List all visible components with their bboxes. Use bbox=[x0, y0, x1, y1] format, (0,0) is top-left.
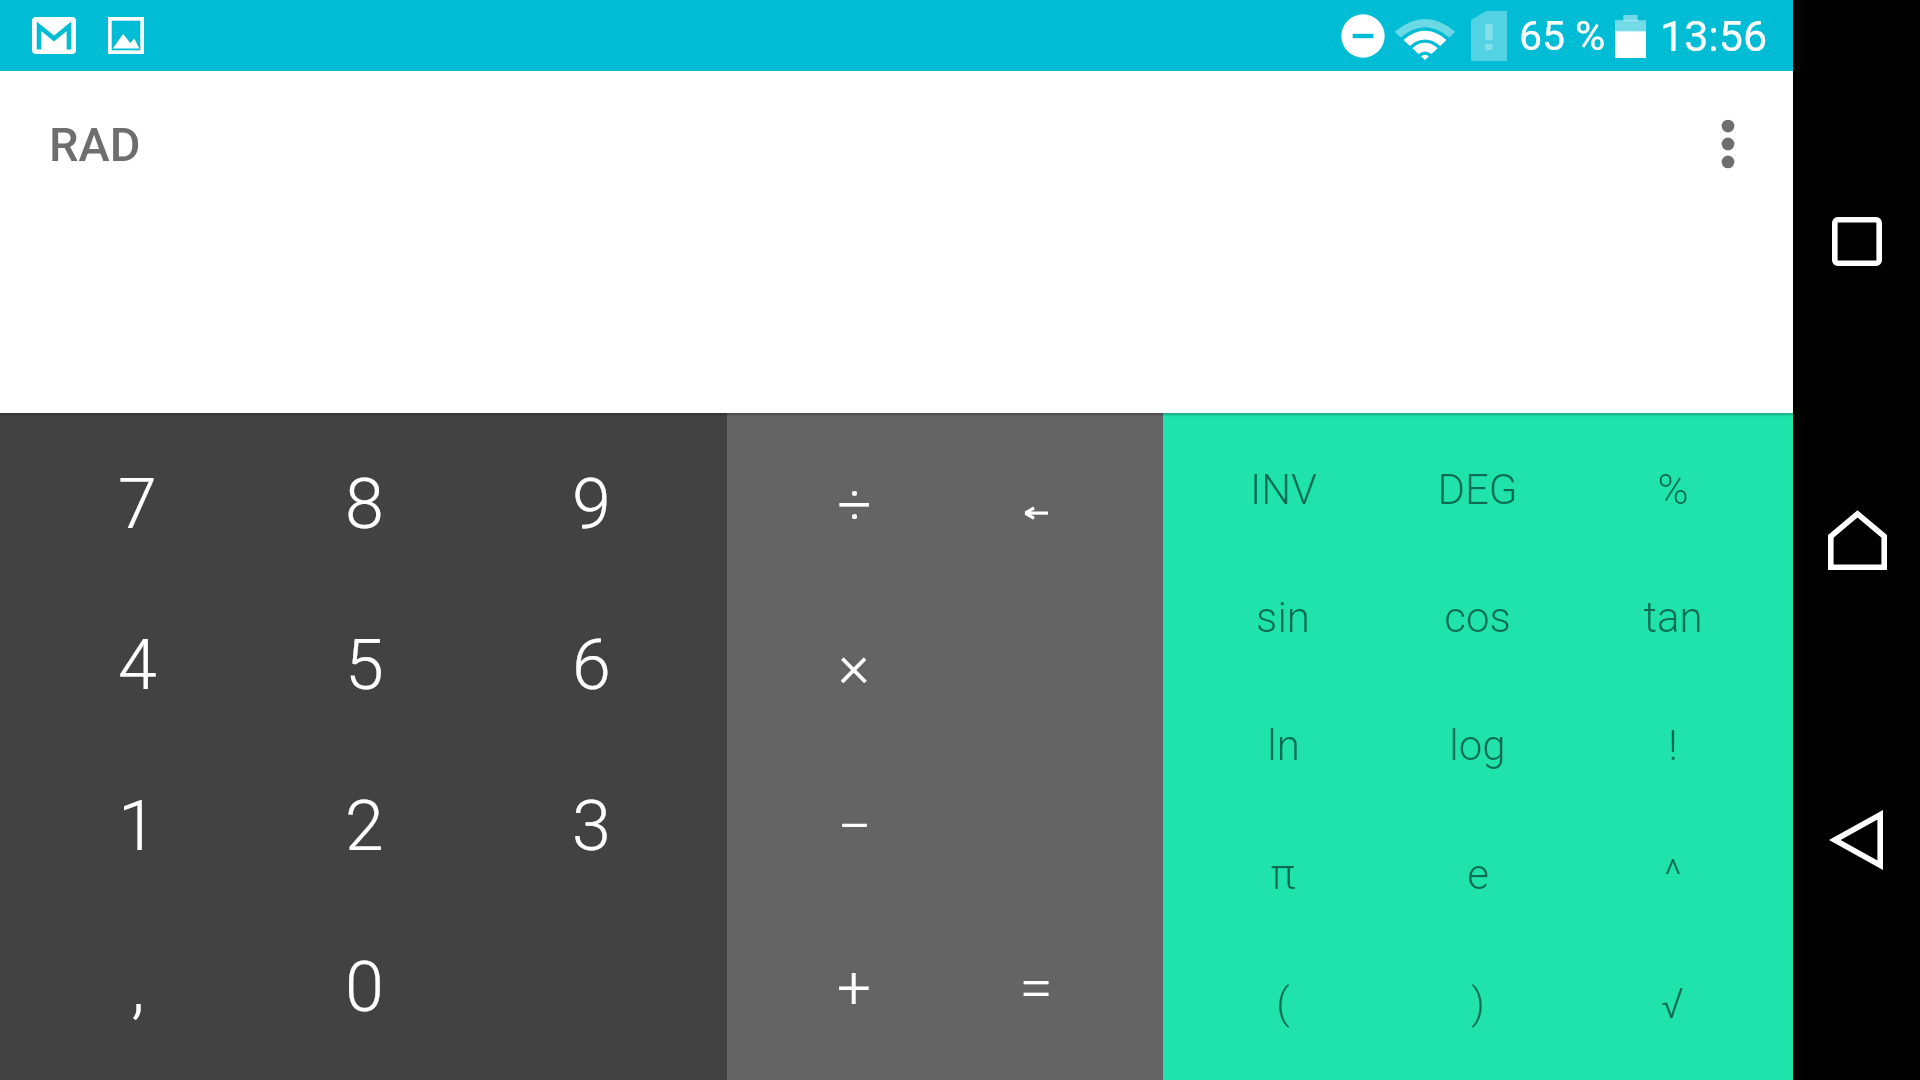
staticText: − bbox=[837, 791, 872, 861]
button[interactable]: × bbox=[763, 584, 945, 745]
staticText: √ bbox=[1661, 979, 1684, 1028]
button[interactable]: 1 bbox=[24, 745, 251, 906]
staticText: DEG bbox=[1437, 465, 1518, 514]
button[interactable]: % bbox=[1575, 425, 1770, 553]
staticText: ! bbox=[1668, 721, 1678, 770]
staticText: ÷ bbox=[837, 469, 872, 539]
staticText: 65 % bbox=[1519, 12, 1606, 60]
button[interactable]: e bbox=[1380, 810, 1575, 939]
button[interactable]: ( bbox=[1186, 939, 1380, 1068]
other: Battery 65 percent bbox=[1615, 15, 1646, 58]
staticText: , bbox=[131, 946, 145, 1028]
button[interactable]: sin bbox=[1186, 553, 1380, 681]
staticText: 7 bbox=[118, 463, 157, 545]
staticText: 9 bbox=[572, 463, 611, 545]
button[interactable]: RAD bbox=[49, 117, 141, 172]
other: No SIM card bbox=[1471, 11, 1507, 61]
button[interactable]: 4 bbox=[24, 584, 251, 745]
button[interactable]: = bbox=[945, 906, 1127, 1067]
staticText: e bbox=[1467, 850, 1489, 899]
other: Gmail notification bbox=[32, 17, 76, 54]
staticText: × bbox=[838, 630, 870, 700]
staticText: 6 bbox=[572, 624, 611, 706]
staticText: 13:56 bbox=[1660, 11, 1768, 61]
button[interactable]: More options bbox=[1679, 95, 1777, 193]
staticText: sin bbox=[1256, 593, 1310, 642]
button[interactable]: + bbox=[763, 906, 945, 1067]
button[interactable]: tan bbox=[1575, 553, 1770, 681]
staticText: % bbox=[1657, 465, 1689, 514]
button[interactable]: π bbox=[1186, 810, 1380, 939]
staticText: 2 bbox=[345, 785, 384, 867]
button[interactable]: 7 bbox=[24, 424, 251, 584]
staticText: RAD bbox=[49, 117, 141, 172]
staticText: cos bbox=[1444, 593, 1511, 642]
button[interactable]: 9 bbox=[478, 424, 705, 584]
other: Do not disturb bbox=[1341, 14, 1385, 58]
button[interactable]: ) bbox=[1380, 939, 1575, 1068]
staticText: ln bbox=[1267, 721, 1300, 770]
staticText: 1 bbox=[118, 785, 157, 867]
staticText: π bbox=[1270, 850, 1296, 899]
button[interactable]: Home bbox=[1802, 485, 1912, 595]
button[interactable]: − bbox=[763, 745, 945, 906]
button[interactable]: 8 bbox=[251, 424, 478, 584]
button[interactable]: cos bbox=[1380, 553, 1575, 681]
staticText: tan bbox=[1643, 593, 1703, 642]
staticText: log bbox=[1449, 721, 1506, 770]
button[interactable]: Recent apps bbox=[1802, 186, 1912, 296]
other: Screenshot notification bbox=[108, 17, 144, 54]
button[interactable]: INV bbox=[1186, 425, 1380, 553]
staticText: = bbox=[1019, 952, 1053, 1022]
staticText: ) bbox=[1471, 979, 1485, 1028]
button[interactable]: ln bbox=[1186, 681, 1380, 810]
other: Wi-Fi bbox=[1395, 13, 1455, 60]
button[interactable]: , bbox=[24, 906, 251, 1067]
button[interactable]: 6 bbox=[478, 584, 705, 745]
button[interactable]: √ bbox=[1575, 939, 1770, 1068]
staticText: 3 bbox=[572, 785, 611, 867]
button[interactable]: ! bbox=[1575, 681, 1770, 810]
staticText: 8 bbox=[345, 463, 384, 545]
button[interactable]: log bbox=[1380, 681, 1575, 810]
button[interactable]: 3 bbox=[478, 745, 705, 906]
button[interactable]: ÷ bbox=[763, 424, 945, 584]
button[interactable]: ^ bbox=[1575, 810, 1770, 939]
staticText: ^ bbox=[1664, 850, 1682, 899]
button[interactable]: Back bbox=[1802, 785, 1912, 895]
button[interactable]: 5 bbox=[251, 584, 478, 745]
staticText: ( bbox=[1276, 979, 1290, 1028]
staticText: 4 bbox=[118, 624, 157, 706]
staticText: 0 bbox=[345, 946, 384, 1028]
button[interactable]: Backspace bbox=[945, 424, 1127, 584]
staticText: 5 bbox=[345, 624, 384, 706]
button[interactable]: 0 bbox=[251, 906, 478, 1067]
staticText: INV bbox=[1250, 465, 1317, 514]
button[interactable]: 2 bbox=[251, 745, 478, 906]
button[interactable]: DEG bbox=[1380, 425, 1575, 553]
staticText: + bbox=[837, 952, 871, 1022]
